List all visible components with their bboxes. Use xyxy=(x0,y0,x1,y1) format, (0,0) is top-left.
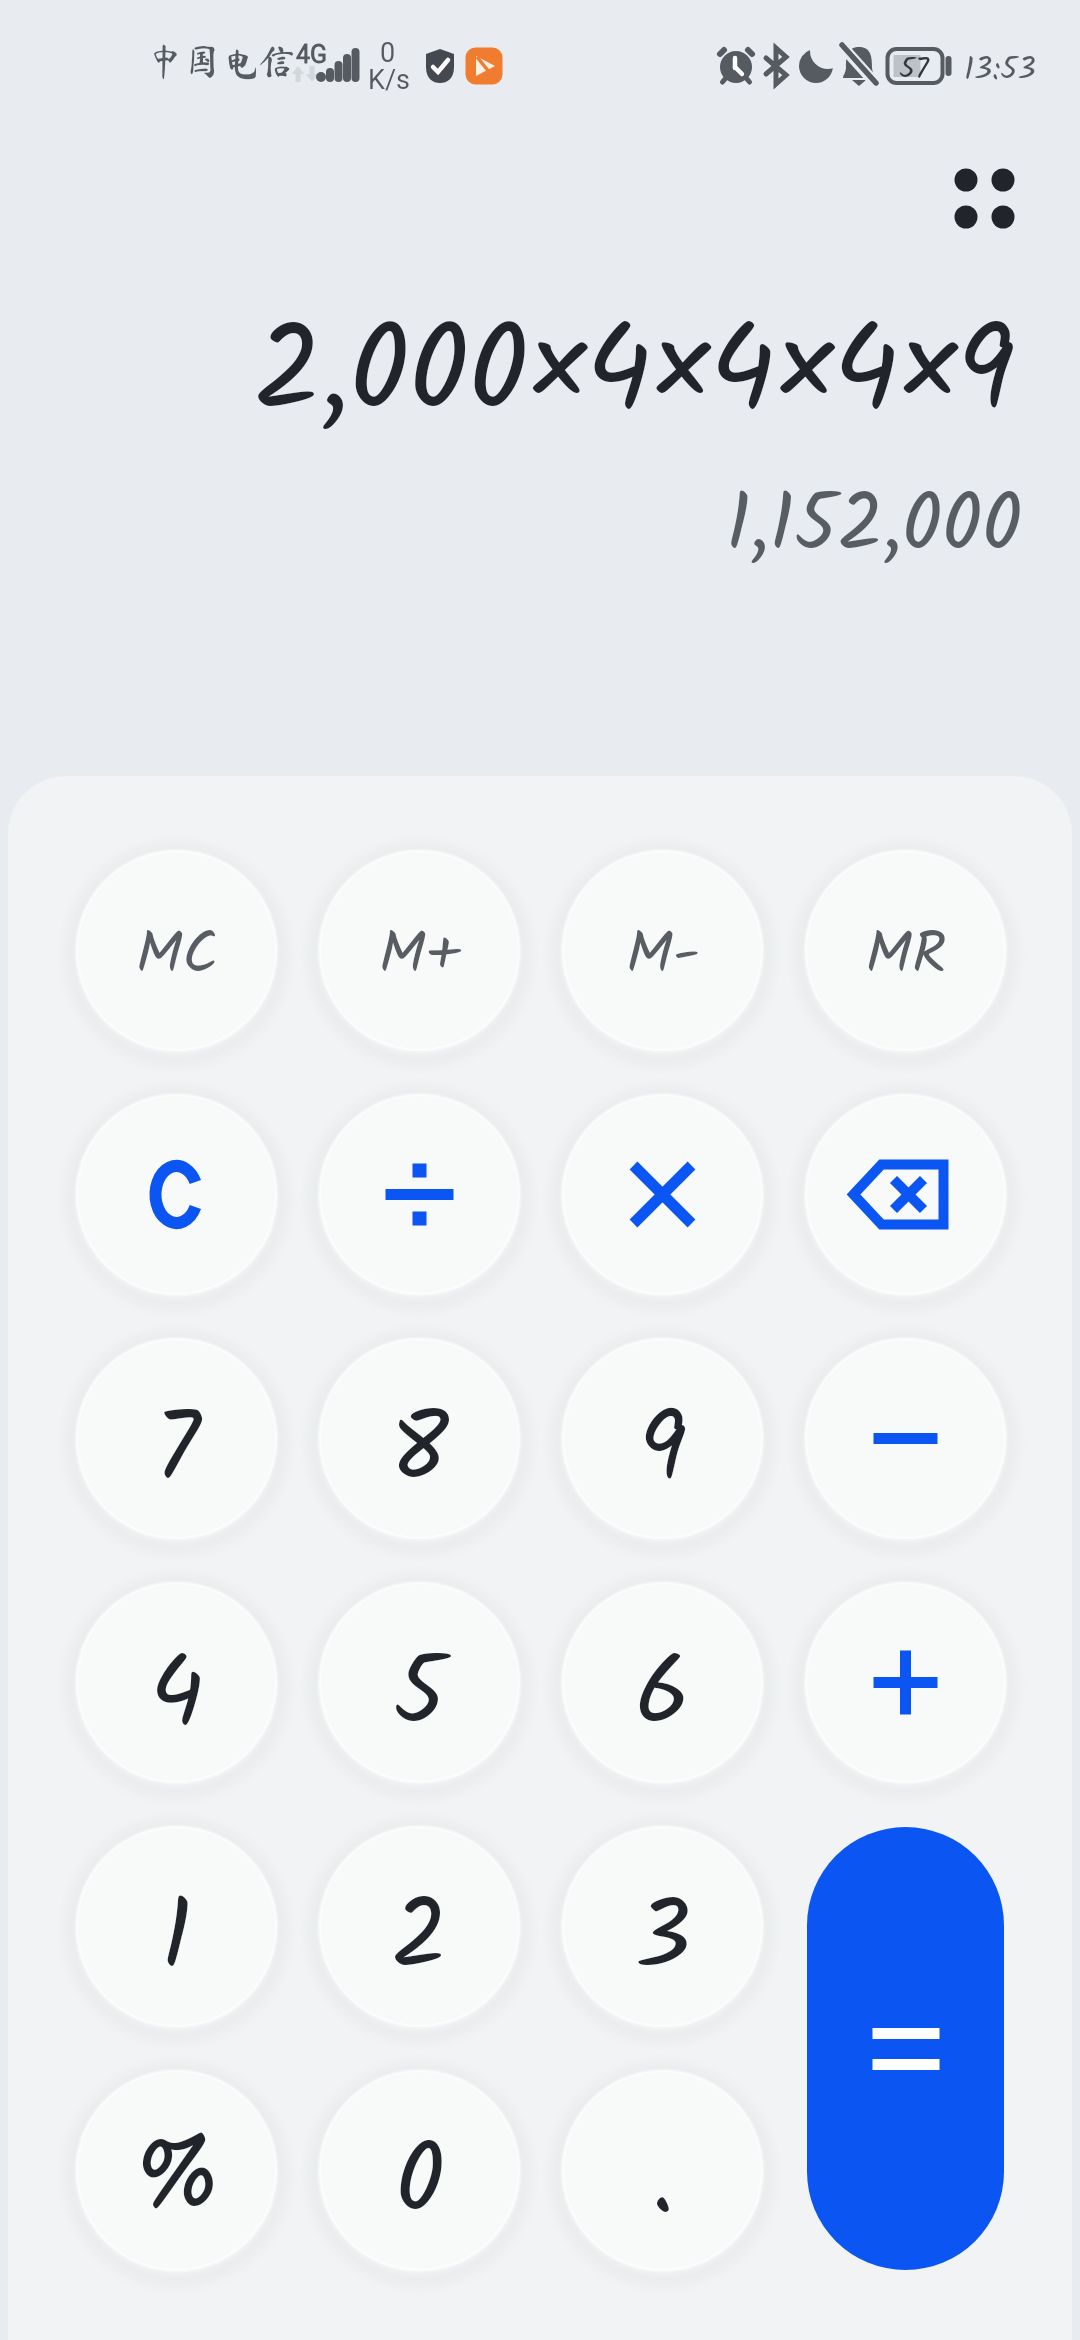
staticText: M- xyxy=(626,909,700,1003)
button[interactable]: MC xyxy=(78,852,275,1049)
staticText: 8 xyxy=(390,1375,449,1531)
staticText: 9 xyxy=(639,1375,687,1531)
button[interactable]: M- xyxy=(564,852,761,1049)
staticText: 0 xyxy=(380,37,396,69)
button[interactable]: 5 xyxy=(321,1584,518,1781)
button[interactable]: Decimal point xyxy=(564,2072,761,2269)
staticText: 3 xyxy=(635,1863,691,2019)
button[interactable]: 2 xyxy=(321,1828,518,2025)
button[interactable]: Minus xyxy=(807,1340,1004,1537)
button[interactable]: 6 xyxy=(564,1584,761,1781)
staticText: 4G xyxy=(296,40,328,69)
staticText: 1,152,000 xyxy=(0,464,1022,592)
button[interactable]: Equals xyxy=(807,1827,1004,2270)
button[interactable]: 8 xyxy=(321,1340,518,1537)
staticText: 6 xyxy=(635,1619,690,1775)
button[interactable]: M+ xyxy=(321,852,518,1049)
staticText: 2,000×4×4×4×9 xyxy=(0,282,1015,472)
button[interactable]: Divide xyxy=(321,1096,518,1293)
button[interactable]: 0 xyxy=(321,2072,518,2269)
staticText: 7 xyxy=(154,1375,200,1531)
staticText: 13:53 xyxy=(964,45,1036,96)
button[interactable]: 3 xyxy=(564,1828,761,2025)
staticText: . xyxy=(651,2107,675,2263)
button[interactable]: Backspace xyxy=(807,1096,1004,1293)
staticText: M+ xyxy=(379,909,461,1003)
button[interactable]: 7 xyxy=(78,1340,275,1537)
button[interactable]: 1 xyxy=(78,1828,275,2025)
button[interactable]: Percent xyxy=(78,2072,275,2269)
staticText: 57 xyxy=(899,46,929,94)
staticText: 5 xyxy=(393,1619,446,1775)
staticText: MC xyxy=(136,909,218,1003)
staticText: MR xyxy=(865,909,947,1003)
button[interactable]: 9 xyxy=(564,1340,761,1537)
staticText: % xyxy=(133,2103,221,2259)
staticText: 1 xyxy=(161,1863,192,2019)
staticText: 2 xyxy=(391,1863,448,2019)
staticText: K/s xyxy=(368,64,411,96)
button[interactable]: Plus xyxy=(807,1584,1004,1781)
button[interactable]: MR xyxy=(807,852,1004,1049)
staticText: 中国电信 xyxy=(147,42,295,79)
button[interactable]: Clear xyxy=(78,1096,275,1293)
staticText: 4 xyxy=(150,1619,204,1775)
button[interactable]: Multiply xyxy=(564,1096,761,1293)
staticText: 0 xyxy=(395,2107,445,2263)
button[interactable]: 4 xyxy=(78,1584,275,1781)
button[interactable]: More options xyxy=(918,142,1028,252)
